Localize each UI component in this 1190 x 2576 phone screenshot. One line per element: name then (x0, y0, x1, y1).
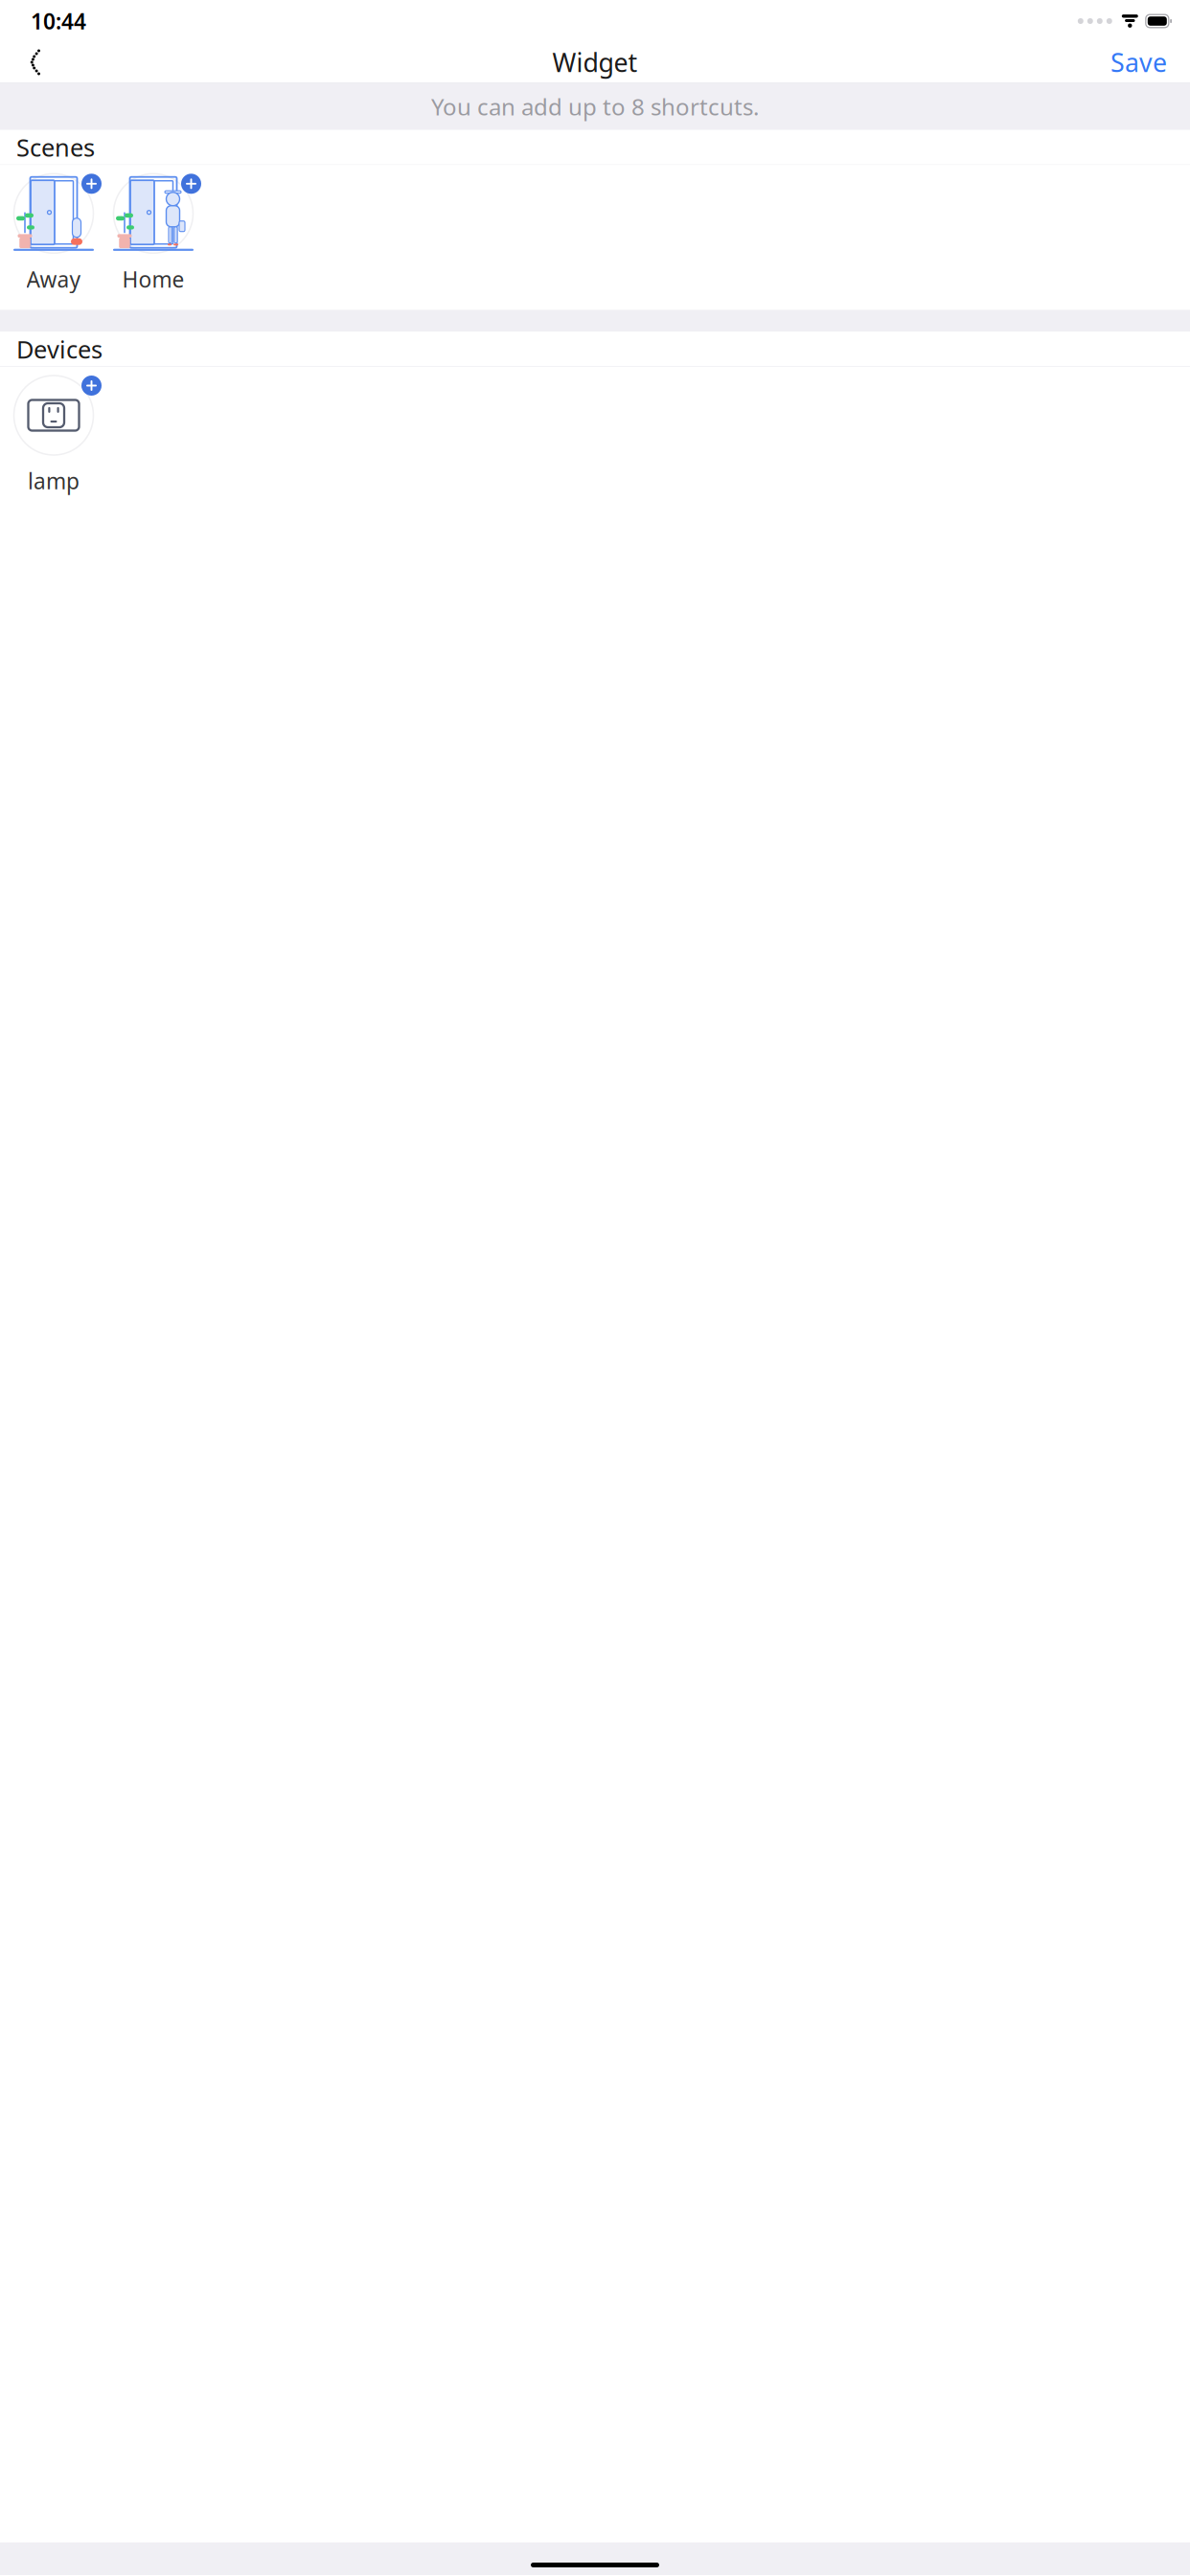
button[interactable]: Save (1099, 38, 1179, 87)
button[interactable]: Add Away shortcut (4, 174, 103, 294)
button[interactable]: Back (11, 42, 54, 83)
staticText: You can add up to 8 shortcuts. (431, 91, 759, 122)
staticText: Widget (552, 45, 638, 79)
staticText: Save (1110, 45, 1167, 79)
staticText: 10:44 (31, 7, 86, 35)
staticText: Scenes (16, 131, 95, 163)
staticText: lamp (28, 467, 80, 495)
staticText: Home (122, 265, 184, 294)
button[interactable]: Add Home shortcut (103, 174, 203, 294)
button[interactable]: Add lamp shortcut (4, 376, 103, 495)
staticText: Devices (16, 333, 103, 365)
staticText: Away (26, 265, 81, 294)
